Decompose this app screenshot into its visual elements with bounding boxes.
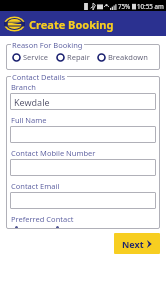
staticText: 75% (118, 2, 131, 10)
staticText: Contact Mobile Number (11, 148, 96, 158)
button[interactable]: Kewdale (10, 93, 156, 110)
button[interactable]: Breakdown (97, 51, 148, 63)
staticText: Service (23, 52, 49, 62)
button[interactable]: Phone (12, 226, 46, 229)
button[interactable] (10, 159, 156, 176)
button[interactable]: Next (114, 233, 160, 254)
staticText: Preferred Contact (11, 214, 74, 224)
staticText: Full Name (11, 115, 47, 125)
staticText: Contact Details (12, 72, 66, 82)
staticText: Create Booking (29, 17, 114, 32)
button[interactable]: Repair (56, 51, 90, 63)
staticText: Breakdown (108, 52, 148, 62)
button[interactable] (10, 192, 156, 209)
staticText: Reason For Booking (12, 40, 83, 50)
button[interactable] (10, 126, 156, 143)
staticText: Contact Email (11, 181, 60, 191)
staticText: 10:55 am (137, 2, 164, 10)
staticText: Branch (11, 82, 36, 92)
staticText: Next (122, 238, 144, 250)
staticText: Kewdale (14, 96, 50, 108)
staticText: Repair (67, 52, 90, 62)
button[interactable]: Email (53, 226, 84, 229)
button[interactable]: Service (12, 51, 49, 63)
